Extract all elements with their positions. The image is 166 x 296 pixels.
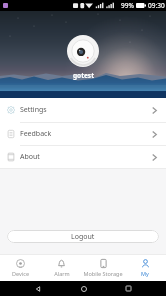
- staticText: Mobile Storage: [83, 270, 123, 277]
- button[interactable]: Mobile Storage: [82, 255, 124, 281]
- staticText: Alarm: [54, 270, 70, 277]
- button[interactable]: Alarm: [41, 255, 82, 281]
- button[interactable]: Recent apps: [121, 281, 136, 296]
- button[interactable]: Settings: [0, 98, 166, 122]
- staticText: Settings: [20, 105, 47, 115]
- button[interactable]: Back: [30, 281, 45, 296]
- staticText: Logout: [71, 232, 95, 242]
- staticText: 99%: [121, 1, 134, 10]
- button[interactable]: My: [124, 255, 166, 281]
- staticText: About: [20, 152, 40, 162]
- staticText: 09:30: [148, 1, 165, 10]
- button[interactable]: Device: [0, 255, 41, 281]
- button[interactable]: Logout: [7, 230, 159, 243]
- staticText: gotest: [73, 71, 94, 80]
- staticText: Device: [12, 270, 29, 277]
- button[interactable]: About: [0, 146, 166, 168]
- staticText: Feedback: [20, 129, 52, 139]
- button[interactable]: Home: [76, 281, 91, 296]
- button[interactable]: Feedback: [0, 123, 166, 145]
- staticText: My: [141, 270, 149, 277]
